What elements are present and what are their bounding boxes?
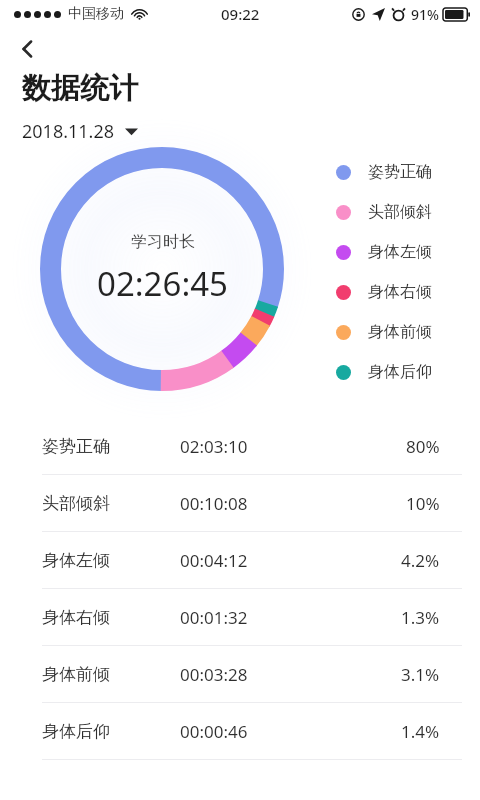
staticText: 姿势正确 [368, 162, 432, 182]
staticText: 00:01:32 [180, 606, 248, 629]
staticText: 4.2% [401, 549, 440, 572]
button[interactable]: 身体右倾 [0, 589, 480, 646]
staticText: 2018.11.28 [22, 119, 115, 144]
staticText: 身体左倾 [42, 550, 110, 571]
button[interactable]: 身体右倾 [336, 272, 432, 312]
staticText: 身体前倾 [368, 322, 432, 342]
staticText: 学习时长 [131, 232, 195, 252]
staticText: 3.1% [401, 663, 440, 686]
staticText: 身体后仰 [42, 721, 110, 742]
staticText: 00:10:08 [180, 492, 248, 515]
button[interactable]: 头部倾斜 [336, 192, 432, 232]
staticText: 10% [406, 492, 440, 515]
staticText: 09:22 [221, 4, 260, 24]
staticText: 1.4% [401, 720, 440, 743]
staticText: 02:26:45 [97, 261, 228, 306]
button[interactable]: 身体左倾 [336, 232, 432, 272]
staticText: 姿势正确 [42, 436, 110, 457]
staticText: 身体后仰 [368, 362, 432, 382]
staticText: 91% [411, 5, 439, 24]
staticText: 数据统计 [22, 70, 138, 107]
button[interactable]: Back [6, 28, 50, 70]
staticText: 头部倾斜 [368, 202, 432, 222]
staticText: 02:03:10 [180, 435, 248, 458]
staticText: 中国移动 [68, 5, 124, 23]
button[interactable]: 身体前倾 [336, 312, 432, 352]
staticText: 身体右倾 [42, 607, 110, 628]
button[interactable]: 身体左倾 [0, 532, 480, 589]
staticText: 00:00:46 [180, 720, 248, 743]
button[interactable]: 身体后仰 [336, 352, 432, 392]
staticText: 00:04:12 [180, 549, 248, 572]
staticText: 头部倾斜 [42, 493, 110, 514]
button[interactable]: 身体前倾 [0, 646, 480, 703]
staticText: 身体左倾 [368, 242, 432, 262]
staticText: 身体前倾 [42, 664, 110, 685]
button[interactable]: 头部倾斜 [0, 475, 480, 532]
staticText: 80% [406, 435, 440, 458]
button[interactable]: 姿势正确 [0, 418, 480, 475]
staticText: 1.3% [401, 606, 440, 629]
button[interactable]: 姿势正确 [336, 152, 432, 192]
staticText: 00:03:28 [180, 663, 248, 686]
button[interactable]: 身体后仰 [0, 703, 480, 760]
button[interactable]: 2018.11.28 [22, 119, 138, 144]
staticText: 身体右倾 [368, 282, 432, 302]
